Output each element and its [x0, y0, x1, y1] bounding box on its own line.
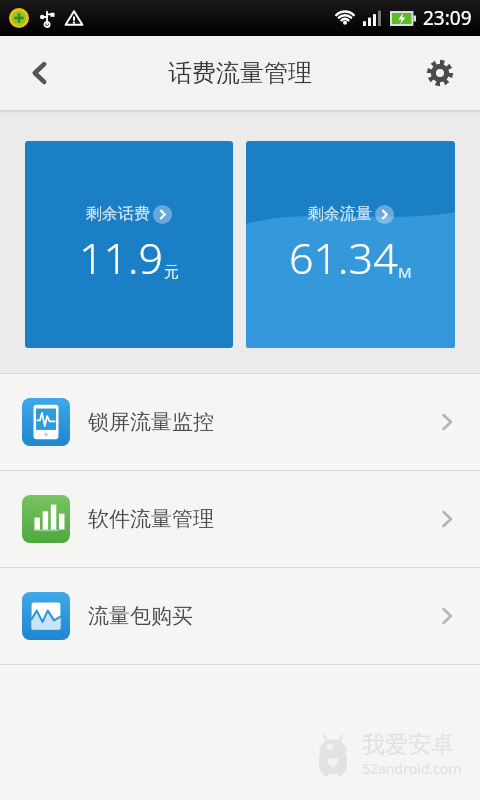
staticText: 我爱安卓	[362, 730, 454, 759]
button[interactable]: 流量包购买	[0, 568, 480, 664]
button[interactable]: Settings	[414, 47, 466, 99]
staticText: 话费流量管理	[168, 58, 312, 88]
staticText: 剩余话费	[86, 204, 150, 224]
staticText: 元	[164, 263, 179, 282]
staticText: 11.9	[79, 228, 164, 287]
button[interactable]: 锁屏流量监控	[0, 374, 480, 470]
staticText: 流量包购买	[88, 603, 436, 629]
button[interactable]: Back	[14, 47, 66, 99]
staticText: 剩余流量	[308, 204, 372, 224]
staticText: 61.34	[289, 228, 398, 287]
staticText: 52android.com	[362, 759, 462, 778]
staticText: 23:09	[423, 5, 472, 31]
staticText: 锁屏流量监控	[88, 409, 436, 435]
button[interactable]: 剩余话费	[25, 141, 233, 348]
staticText: 软件流量管理	[88, 506, 436, 532]
button[interactable]: 剩余流量	[246, 141, 455, 348]
staticText: M	[398, 262, 412, 282]
button[interactable]: 软件流量管理	[0, 471, 480, 567]
